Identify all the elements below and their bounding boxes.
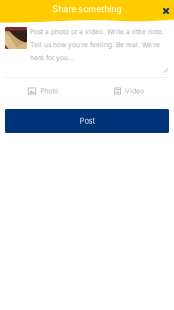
staticText: Photo xyxy=(40,87,58,95)
staticText: Share something xyxy=(52,4,121,14)
button[interactable]: Close xyxy=(157,3,174,19)
button[interactable]: Video xyxy=(100,84,158,98)
staticText: Video xyxy=(125,87,144,95)
staticText: Post a photo or a video. Write a little … xyxy=(30,28,164,62)
button[interactable]: Post xyxy=(5,109,169,133)
button[interactable]: Photo xyxy=(14,84,72,98)
staticText: Post xyxy=(79,116,94,125)
